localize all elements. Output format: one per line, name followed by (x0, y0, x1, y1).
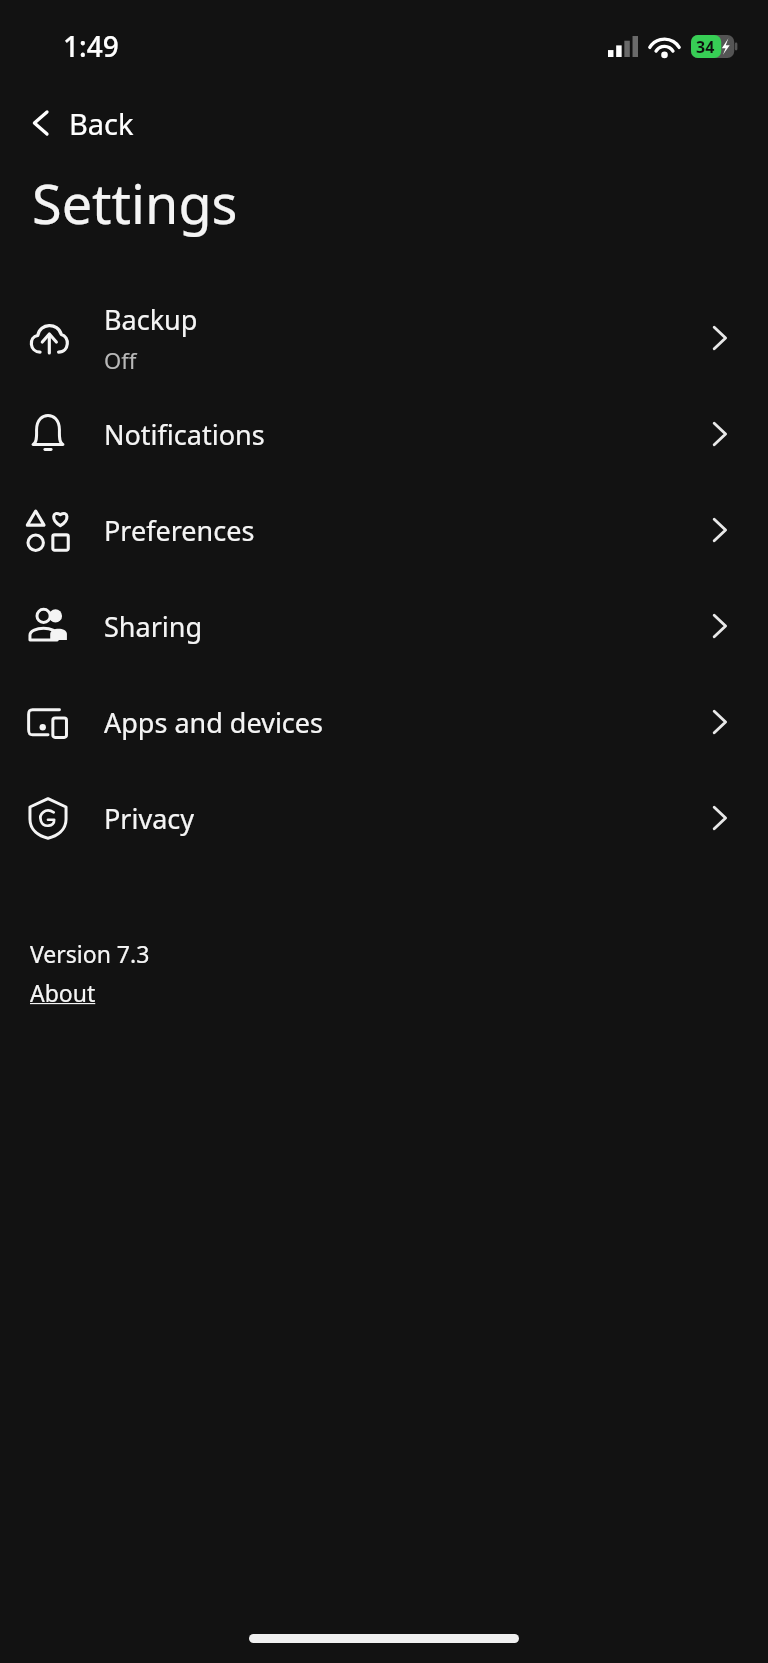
staticText: 34 (696, 36, 715, 58)
staticText: Back (69, 104, 134, 143)
button[interactable]: Privacy (0, 770, 768, 866)
other: Apps and devices (26, 700, 70, 744)
other: Sharing (26, 604, 70, 648)
staticText: Settings (32, 166, 238, 240)
button[interactable]: Notifications (0, 386, 768, 482)
button[interactable]: Sharing (0, 578, 768, 674)
staticText: Off (104, 345, 137, 375)
staticText: Apps and devices (104, 704, 323, 741)
other: Backup (26, 316, 70, 360)
button[interactable]: Preferences (0, 482, 768, 578)
staticText: Sharing (104, 608, 203, 645)
staticText: 1:49 (63, 27, 119, 65)
staticText: Privacy (104, 800, 195, 837)
staticText: Version 7.3 (30, 938, 150, 969)
staticText: Preferences (104, 512, 255, 549)
button[interactable]: About (30, 977, 96, 1008)
button[interactable]: Apps and devices (0, 674, 768, 770)
staticText: About (30, 977, 96, 1008)
staticText: Backup (104, 301, 198, 338)
other: Notifications (26, 412, 70, 456)
staticText: Notifications (104, 416, 265, 453)
other: Privacy (26, 796, 70, 840)
button[interactable]: Back (16, 92, 144, 154)
button[interactable]: Backup (0, 290, 768, 386)
other: Preferences (26, 508, 70, 552)
